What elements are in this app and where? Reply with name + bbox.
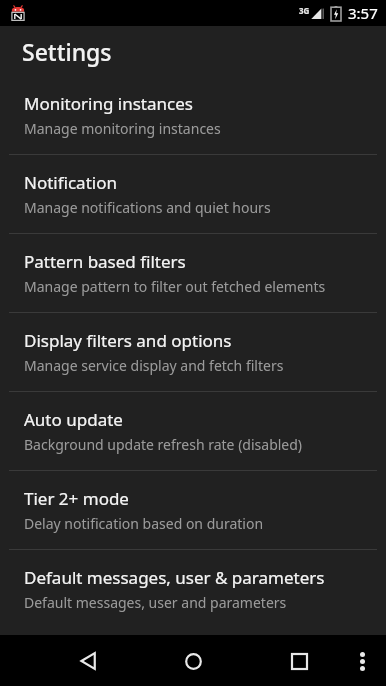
button[interactable]: Display filters and options [0,313,386,391]
staticText: Default messages, user & parameters [24,566,325,589]
button[interactable]: Monitoring instances [0,76,386,154]
staticText: Display filters and options [24,329,232,352]
button[interactable]: Recent apps [278,640,320,682]
staticText: Manage notifications and quiet hours [24,198,271,217]
staticText: Auto update [24,408,123,431]
staticText: Monitoring instances [24,92,193,115]
staticText: Pattern based filters [24,250,186,273]
staticText: Manage pattern to filter out fetched ele… [24,277,326,296]
staticText: 3:57 [348,3,378,23]
staticText: 3G [299,5,310,16]
staticText: Background update refresh rate (disabled… [24,435,303,454]
button[interactable]: Tier 2+ mode [0,471,386,549]
button[interactable]: Default messages, user & parameters [0,550,386,628]
button[interactable]: Back [68,640,110,682]
staticText: Delay notification based on duration [24,514,264,533]
staticText: Tier 2+ mode [24,487,129,510]
staticText: Notification [24,171,117,194]
button[interactable]: Auto update [0,392,386,470]
button[interactable]: Notification [0,155,386,233]
button[interactable]: Pattern based filters [0,234,386,312]
staticText: Manage service display and fetch filters [24,356,284,375]
button[interactable]: Home [172,640,214,682]
staticText: Manage monitoring instances [24,119,221,138]
staticText: Settings [22,36,112,67]
button[interactable]: More options [344,643,380,679]
staticText: Default messages, user and parameters [24,593,287,612]
